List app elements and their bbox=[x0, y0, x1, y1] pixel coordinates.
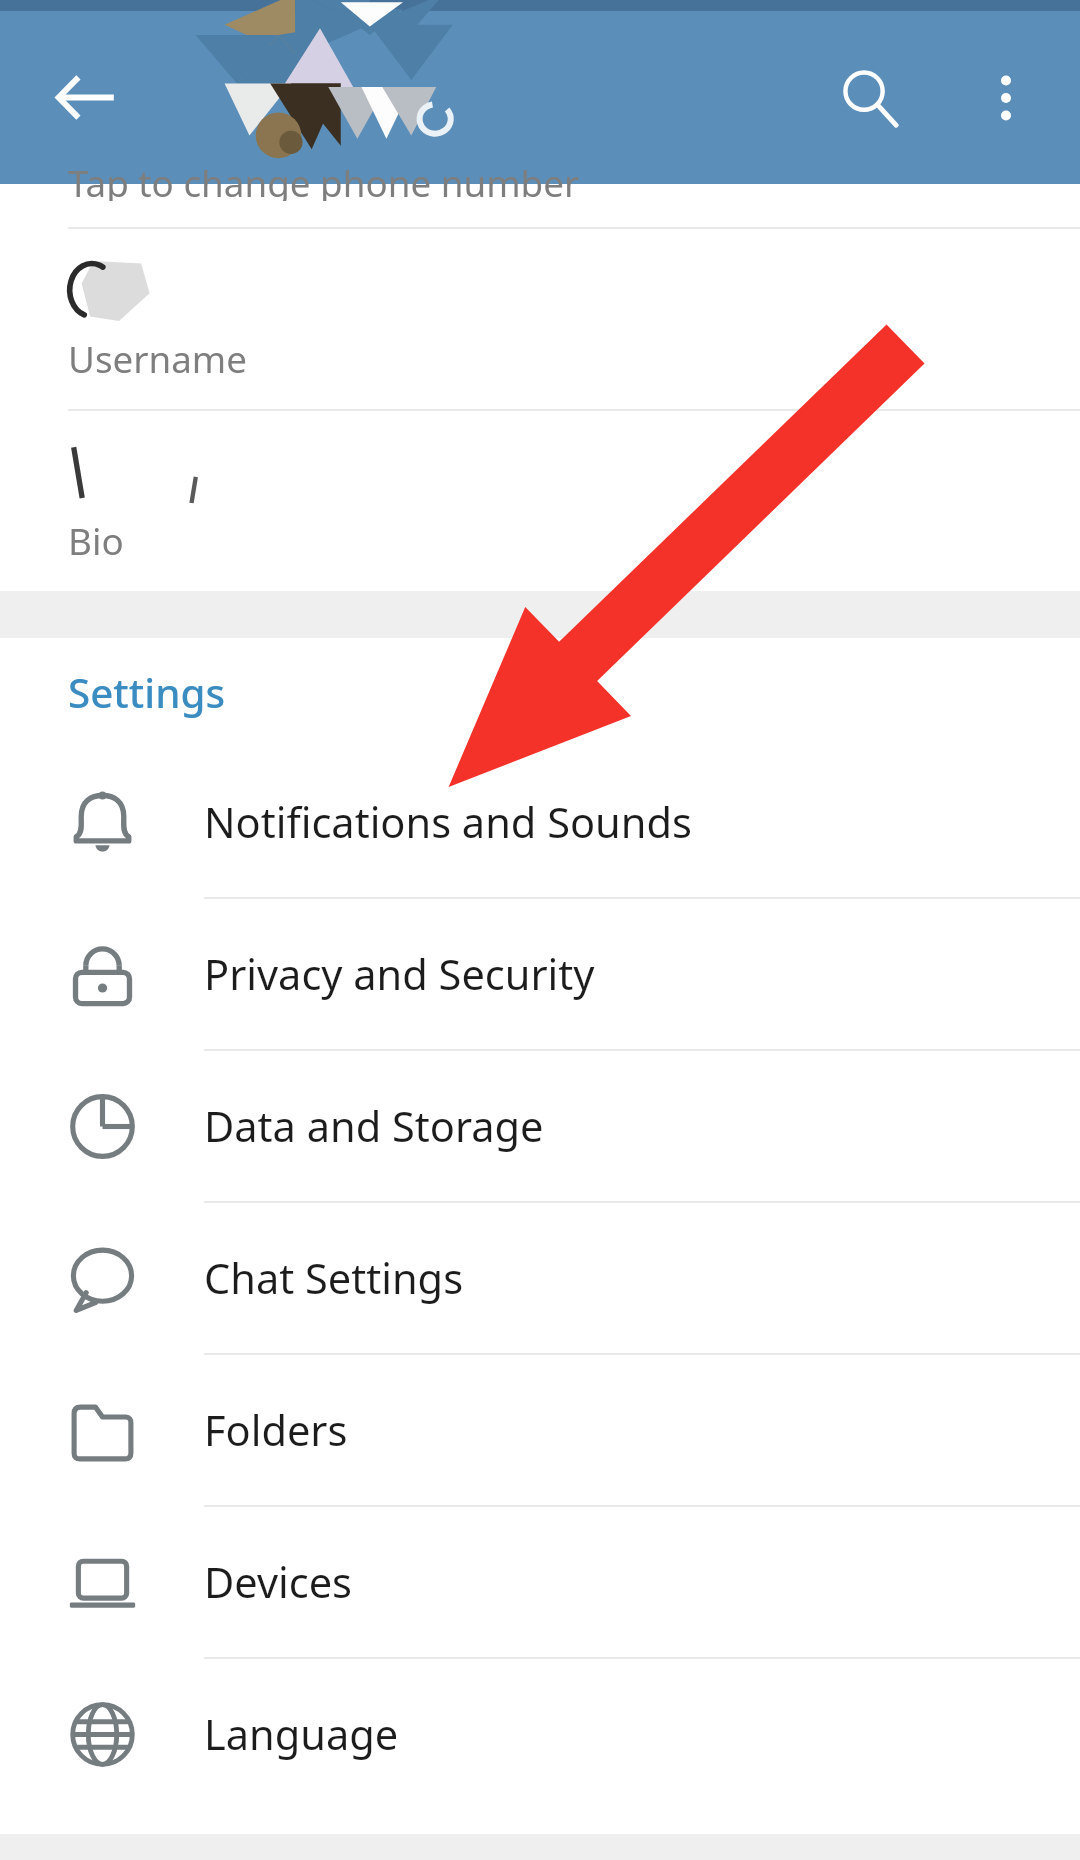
button[interactable]: Username bbox=[0, 229, 1080, 409]
staticText: Settings bbox=[68, 665, 226, 720]
staticText: Username bbox=[68, 334, 247, 384]
staticText: Privacy and Security bbox=[204, 946, 595, 1003]
button[interactable]: Data and Storage bbox=[0, 1051, 1080, 1201]
button[interactable]: Folders bbox=[0, 1355, 1080, 1505]
button[interactable]: Search bbox=[807, 36, 930, 159]
staticText: Chat Settings bbox=[204, 1250, 464, 1307]
button[interactable]: Chat Settings bbox=[0, 1203, 1080, 1353]
button[interactable]: Language bbox=[0, 1659, 1080, 1809]
button[interactable]: More options bbox=[949, 41, 1063, 155]
button[interactable]: Notifications and Sounds bbox=[0, 747, 1080, 897]
staticText: Folders bbox=[204, 1402, 348, 1459]
button[interactable]: Devices bbox=[0, 1507, 1080, 1657]
staticText: Data and Storage bbox=[204, 1098, 544, 1155]
staticText: Notifications and Sounds bbox=[204, 794, 692, 851]
staticText: Tap to change phone number bbox=[68, 158, 580, 201]
staticText: Language bbox=[204, 1706, 399, 1763]
button[interactable]: Privacy and Security bbox=[0, 899, 1080, 1049]
button[interactable]: Bio bbox=[0, 411, 1080, 591]
button[interactable]: Back bbox=[24, 36, 147, 159]
staticText: Bio bbox=[68, 516, 124, 566]
button[interactable]: Tap to change phone number bbox=[0, 184, 1080, 227]
staticText: Devices bbox=[204, 1554, 352, 1611]
